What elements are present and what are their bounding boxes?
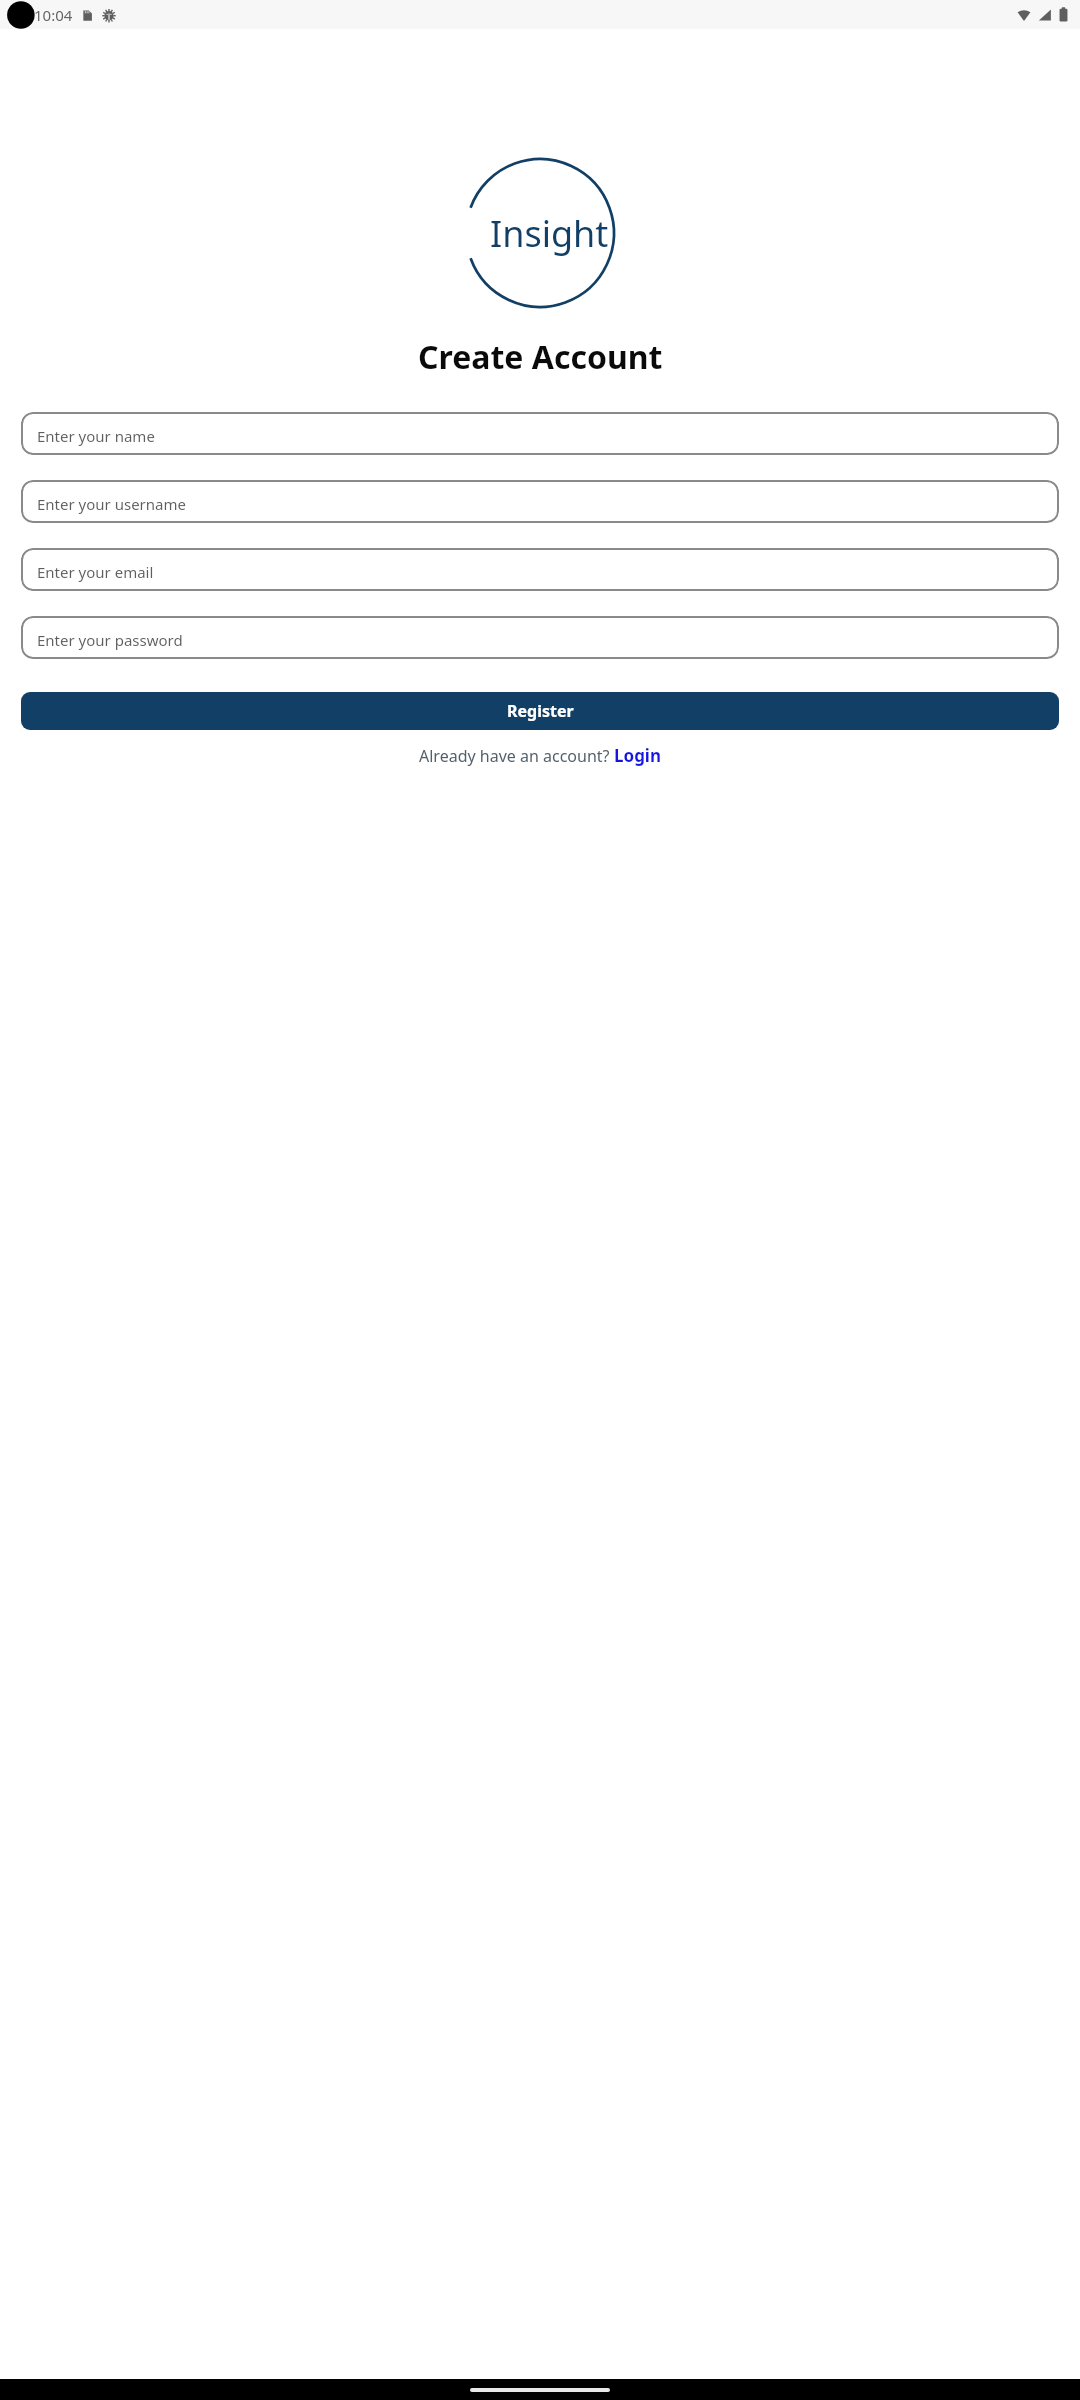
button[interactable]: Enter your password [21,616,1059,659]
staticText: Enter your password [37,630,183,650]
button[interactable]: Enter your email [21,548,1059,591]
staticText: Enter your email [37,562,154,582]
button[interactable]: Enter your name [21,412,1059,455]
button[interactable]: Register [21,692,1059,730]
button[interactable]: Login [614,744,662,767]
staticText: Login [614,744,662,767]
staticText: Create Account [418,335,663,379]
staticText: Enter your username [37,494,186,514]
staticText: Already have an account? [419,745,614,767]
staticText: Enter your name [37,426,155,446]
other: Home gesture handle [470,2388,610,2392]
staticText: Register [507,700,574,722]
staticText: Insight [490,209,609,258]
staticText: 10:04 [34,5,73,25]
button[interactable]: Enter your username [21,480,1059,523]
